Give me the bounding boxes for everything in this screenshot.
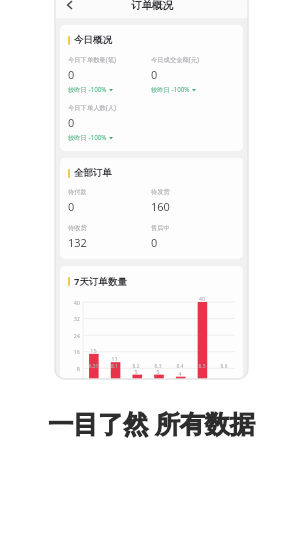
staticText: 较昨日 -100%	[151, 85, 190, 94]
staticText: 8	[68, 365, 80, 372]
staticText: 160	[151, 199, 170, 214]
button[interactable]: Back	[60, 0, 80, 15]
staticText: 15	[83, 347, 104, 354]
button[interactable]: 今日成交金额(元)	[151, 55, 235, 94]
staticText: 较昨日 -100%	[68, 85, 107, 94]
staticText: 0	[151, 235, 158, 250]
staticText: 较昨日 -100%	[68, 133, 107, 142]
staticText: 24	[68, 332, 80, 339]
staticText: 32	[68, 315, 80, 322]
button[interactable]: 今日下单数量(笔)	[68, 55, 151, 94]
staticText: 0	[151, 67, 158, 82]
staticText: 今日概况	[74, 34, 112, 46]
staticText: 今日成交金额(元)	[151, 55, 199, 64]
staticText: 8.3	[147, 363, 169, 370]
button[interactable]: 待发货	[151, 188, 235, 214]
staticText: 待发货	[151, 188, 170, 196]
staticText: 待付款	[68, 188, 87, 196]
staticText: 0	[68, 199, 75, 214]
staticText: 8.6	[213, 363, 235, 370]
staticText: 售后中	[151, 224, 170, 232]
staticText: 40	[191, 295, 213, 302]
staticText: 7天订单数量	[74, 275, 127, 288]
button[interactable]: 待收货	[68, 224, 151, 250]
staticText: 今日下单数量(笔)	[68, 55, 116, 64]
staticText: 5	[125, 368, 147, 375]
button[interactable]: 售后中	[151, 224, 235, 250]
staticText: 8.4	[169, 363, 191, 370]
staticText: 8.2	[125, 363, 147, 370]
staticText: 11	[104, 355, 125, 362]
staticText: 4	[169, 370, 191, 377]
staticText: 今日下单人数(人)	[68, 103, 116, 112]
staticText: 全部订单	[74, 167, 112, 179]
staticText: 6.31	[83, 363, 104, 370]
staticText: 8.1	[104, 363, 125, 370]
staticText: 0	[68, 115, 75, 130]
staticText: 5	[147, 368, 169, 375]
button[interactable]: 今日下单人数(人)	[68, 103, 151, 142]
staticText: 16	[68, 348, 80, 355]
staticText: 132	[68, 235, 87, 250]
staticText: 一目了然 所有数据	[48, 406, 255, 440]
staticText: 0	[68, 67, 75, 82]
staticText: 8.5	[191, 363, 213, 370]
staticText: 40	[68, 299, 80, 306]
staticText: 订单概况	[131, 0, 173, 12]
staticText: 待收货	[68, 224, 87, 232]
button[interactable]: 待付款	[68, 188, 151, 214]
